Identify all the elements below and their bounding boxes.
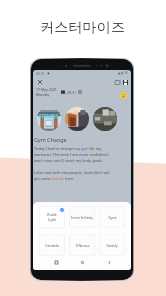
staticText: Syne xyxy=(108,215,117,220)
staticText: Inner Infinity xyxy=(71,215,93,220)
button[interactable]: Save xyxy=(121,78,129,86)
button[interactable]: Rubik Light xyxy=(39,206,65,228)
button[interactable]: Mood xyxy=(120,92,127,99)
staticText: Satisfy xyxy=(106,243,118,248)
button[interactable]: Il Nuovo xyxy=(69,234,95,256)
staticText: 17 May 2021 xyxy=(36,87,57,92)
staticText: Monday xyxy=(36,92,50,97)
button[interactable]: Back xyxy=(105,258,113,266)
button[interactable]: Candela xyxy=(39,234,65,256)
staticText: Il Nuovo xyxy=(75,243,90,248)
staticText: FITNESS xyxy=(39,112,59,119)
button[interactable]: Add photo xyxy=(113,78,121,86)
staticText: 커스터마이즈 xyxy=(40,19,126,37)
button[interactable]: Photo 2 xyxy=(65,107,89,131)
staticText: Rubik Light xyxy=(47,212,57,222)
staticText: 20:31 xyxy=(36,71,45,76)
staticText: Candela xyxy=(45,243,59,248)
button[interactable]: Recents xyxy=(52,258,60,266)
staticText: Gym Change xyxy=(34,136,67,143)
button[interactable]: Satisfy xyxy=(99,234,125,256)
button[interactable]: Home xyxy=(78,258,86,266)
staticText: 20:31 xyxy=(67,90,76,95)
button[interactable]: Syne xyxy=(99,206,125,228)
staticText: ▲ ▮ 98 xyxy=(118,71,128,75)
staticText: Today I had to change my gym for my work… xyxy=(34,146,112,163)
staticText: I also met with new people, looks like I… xyxy=(34,170,112,181)
button[interactable]: Inner Infinity xyxy=(69,206,95,228)
button[interactable]: Photo 3 xyxy=(93,107,117,131)
button[interactable]: Photo 1 xyxy=(37,107,61,131)
button[interactable]: Close xyxy=(36,78,44,86)
